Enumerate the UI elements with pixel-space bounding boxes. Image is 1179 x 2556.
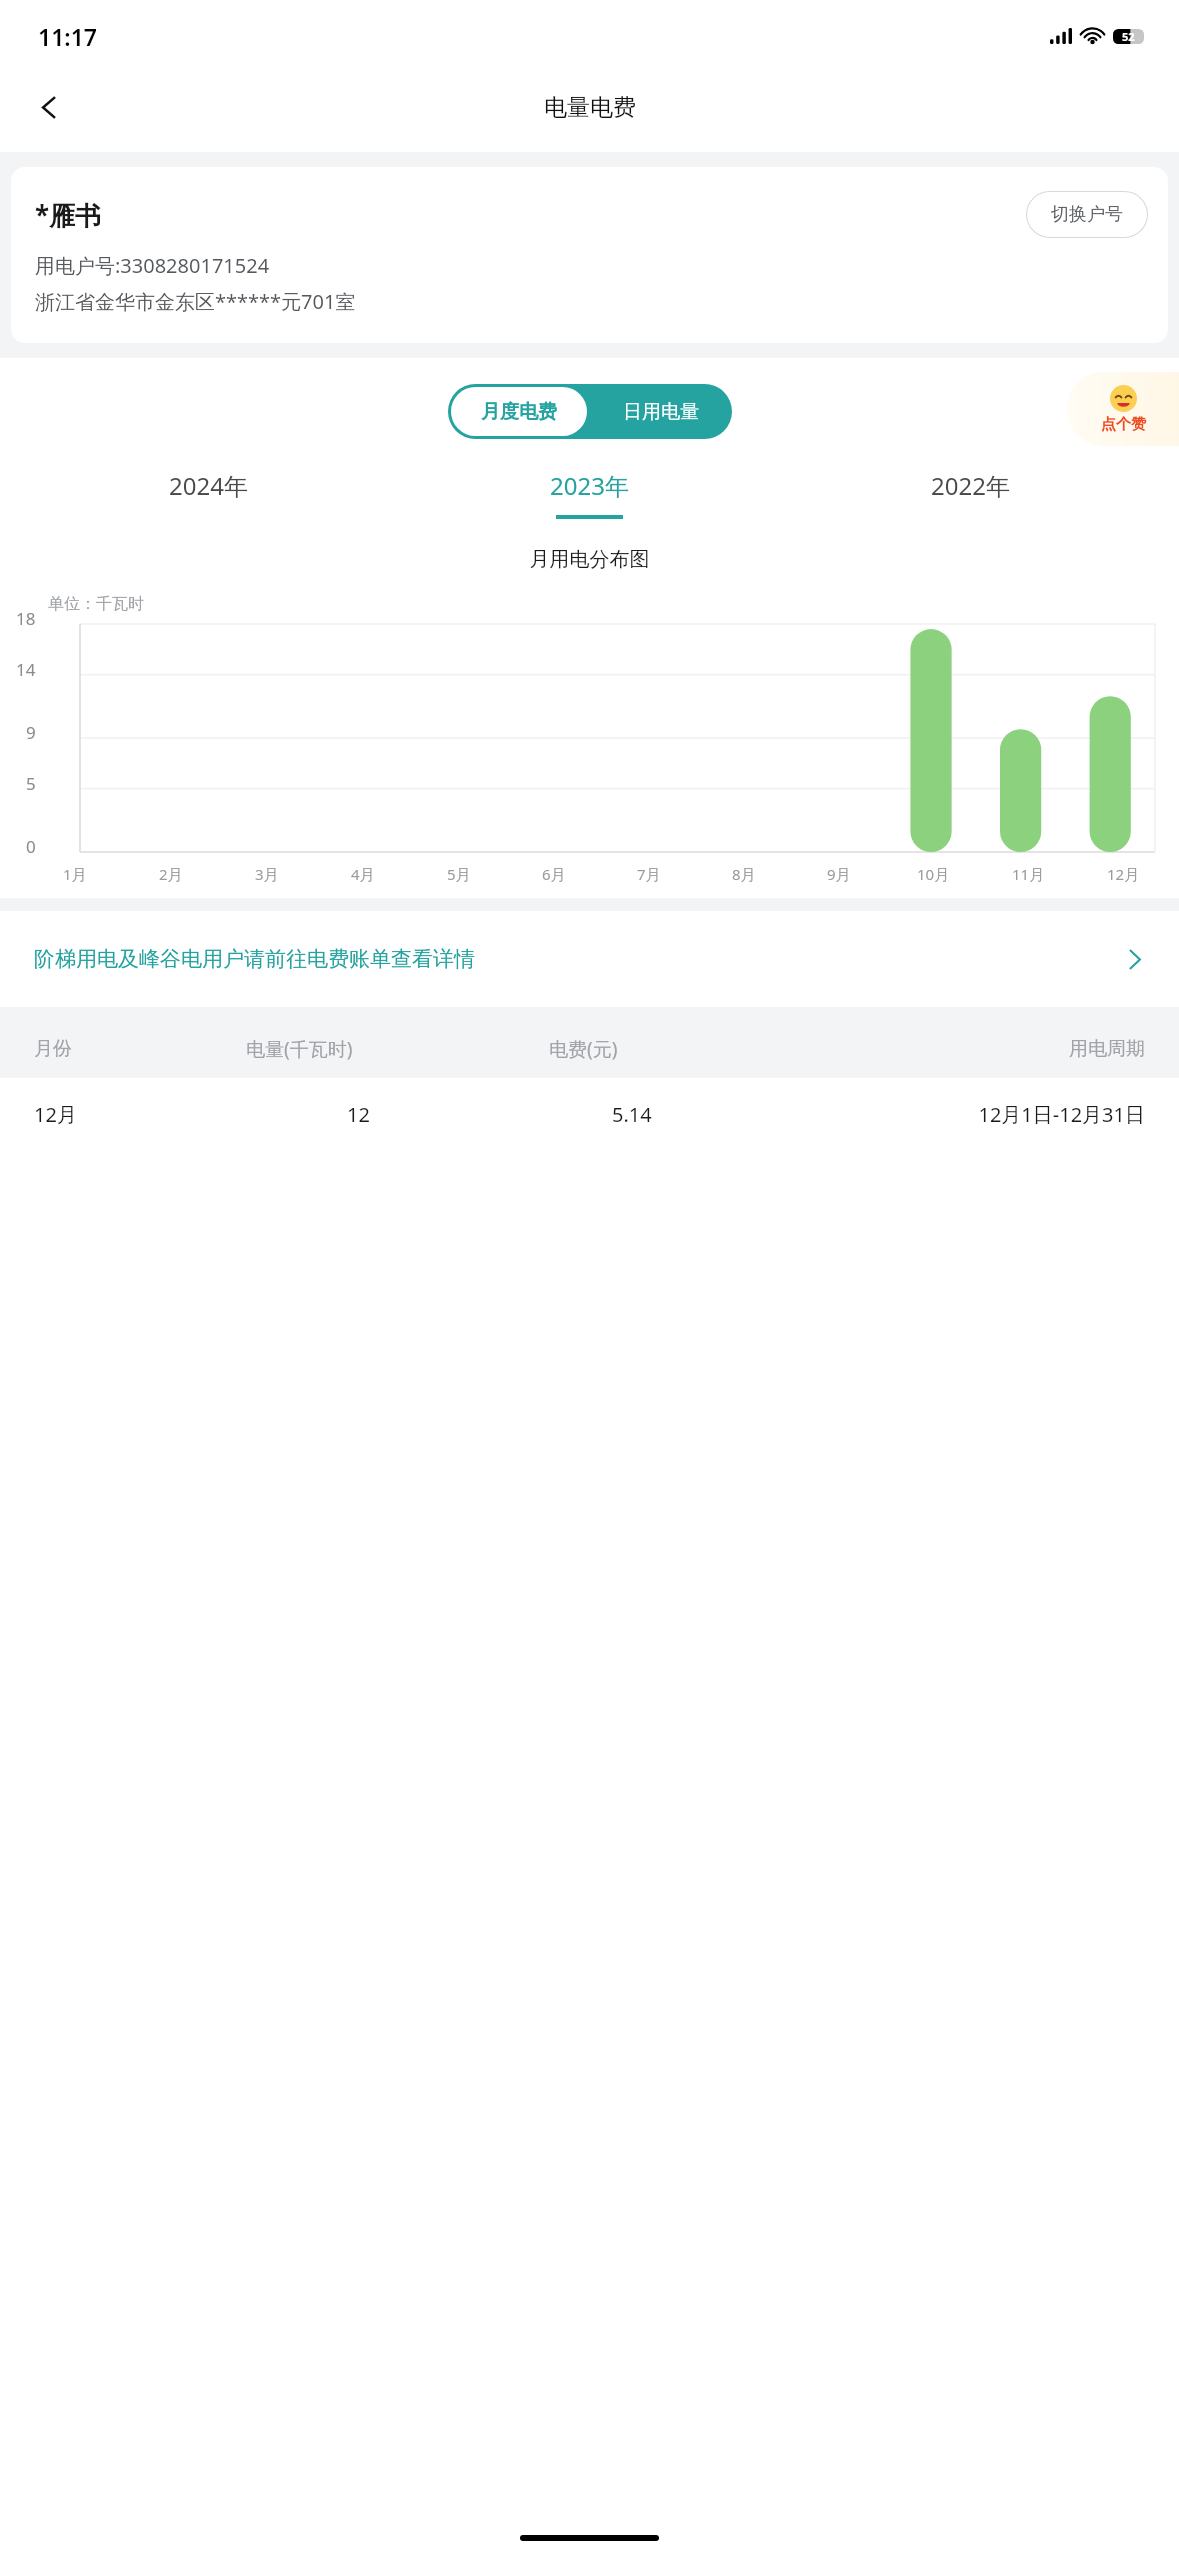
staticText: 11:17 <box>38 21 97 52</box>
staticText: 11月 <box>1012 864 1045 884</box>
staticText: 9 <box>26 721 36 744</box>
button[interactable]: 日用电量 <box>590 384 732 439</box>
staticText: 4月 <box>351 864 375 884</box>
staticText: 2024年 <box>169 469 248 502</box>
staticText: 12 <box>347 1101 370 1128</box>
button[interactable]: *雁书 <box>11 167 1168 343</box>
staticText: 点个赞 <box>1101 415 1146 434</box>
staticText: 日用电量 <box>623 400 699 424</box>
staticText: 切换户号 <box>1051 203 1123 226</box>
staticText: 1月 <box>63 864 87 884</box>
staticText: 电量(千瓦时) <box>246 1036 549 1062</box>
staticText: 0 <box>26 835 36 858</box>
staticText: 18 <box>16 607 36 630</box>
button[interactable]: 2022年 <box>780 469 1161 519</box>
button[interactable]: 月度电费 <box>451 387 587 436</box>
staticText: 月份 <box>34 1037 246 1061</box>
staticText: 7月 <box>637 864 661 884</box>
button[interactable]: Back <box>20 78 78 136</box>
staticText: 12月 <box>1107 864 1140 884</box>
staticText: 阶梯用电及峰谷电用户请前往电费账单查看详情 <box>34 946 475 972</box>
staticText: 6月 <box>542 864 566 884</box>
staticText: 12月 <box>34 1101 222 1128</box>
staticText: 9月 <box>827 864 851 884</box>
button[interactable]: 切换户号 <box>1026 191 1148 238</box>
staticText: 浙江省金华市金东区******元701室 <box>35 288 356 315</box>
staticText: 3月 <box>255 864 279 884</box>
staticText: 电量电费 <box>544 93 636 122</box>
button[interactable]: 阶梯用电及峰谷电用户请前往电费账单查看详情 <box>0 911 1179 1007</box>
staticText: 月度电费 <box>481 400 557 424</box>
staticText: 电费(元) <box>549 1036 842 1062</box>
button[interactable]: 2023年 <box>399 469 780 519</box>
staticText: 12月1日-12月31日 <box>768 1101 1145 1128</box>
staticText: 2月 <box>159 864 183 884</box>
staticText: 用电周期 <box>842 1037 1145 1061</box>
staticText: 52 <box>1122 29 1135 44</box>
staticText: *雁书 <box>35 197 102 233</box>
staticText: 14 <box>16 658 36 681</box>
staticText: 2022年 <box>931 469 1010 502</box>
button[interactable]: 点个赞 <box>1067 372 1179 446</box>
staticText: 单位：千瓦时 <box>48 594 144 614</box>
staticText: 2023年 <box>550 469 629 502</box>
button[interactable]: 2024年 <box>18 469 399 519</box>
staticText: 用电户号:3308280171524 <box>35 252 270 279</box>
staticText: 5.14 <box>612 1101 652 1128</box>
staticText: 8月 <box>732 864 756 884</box>
staticText: 10月 <box>917 864 950 884</box>
button[interactable]: 12月 <box>0 1078 1179 1150</box>
staticText: 5 <box>26 772 36 795</box>
staticText: 月用电分布图 <box>0 547 1179 572</box>
staticText: 5月 <box>447 864 471 884</box>
